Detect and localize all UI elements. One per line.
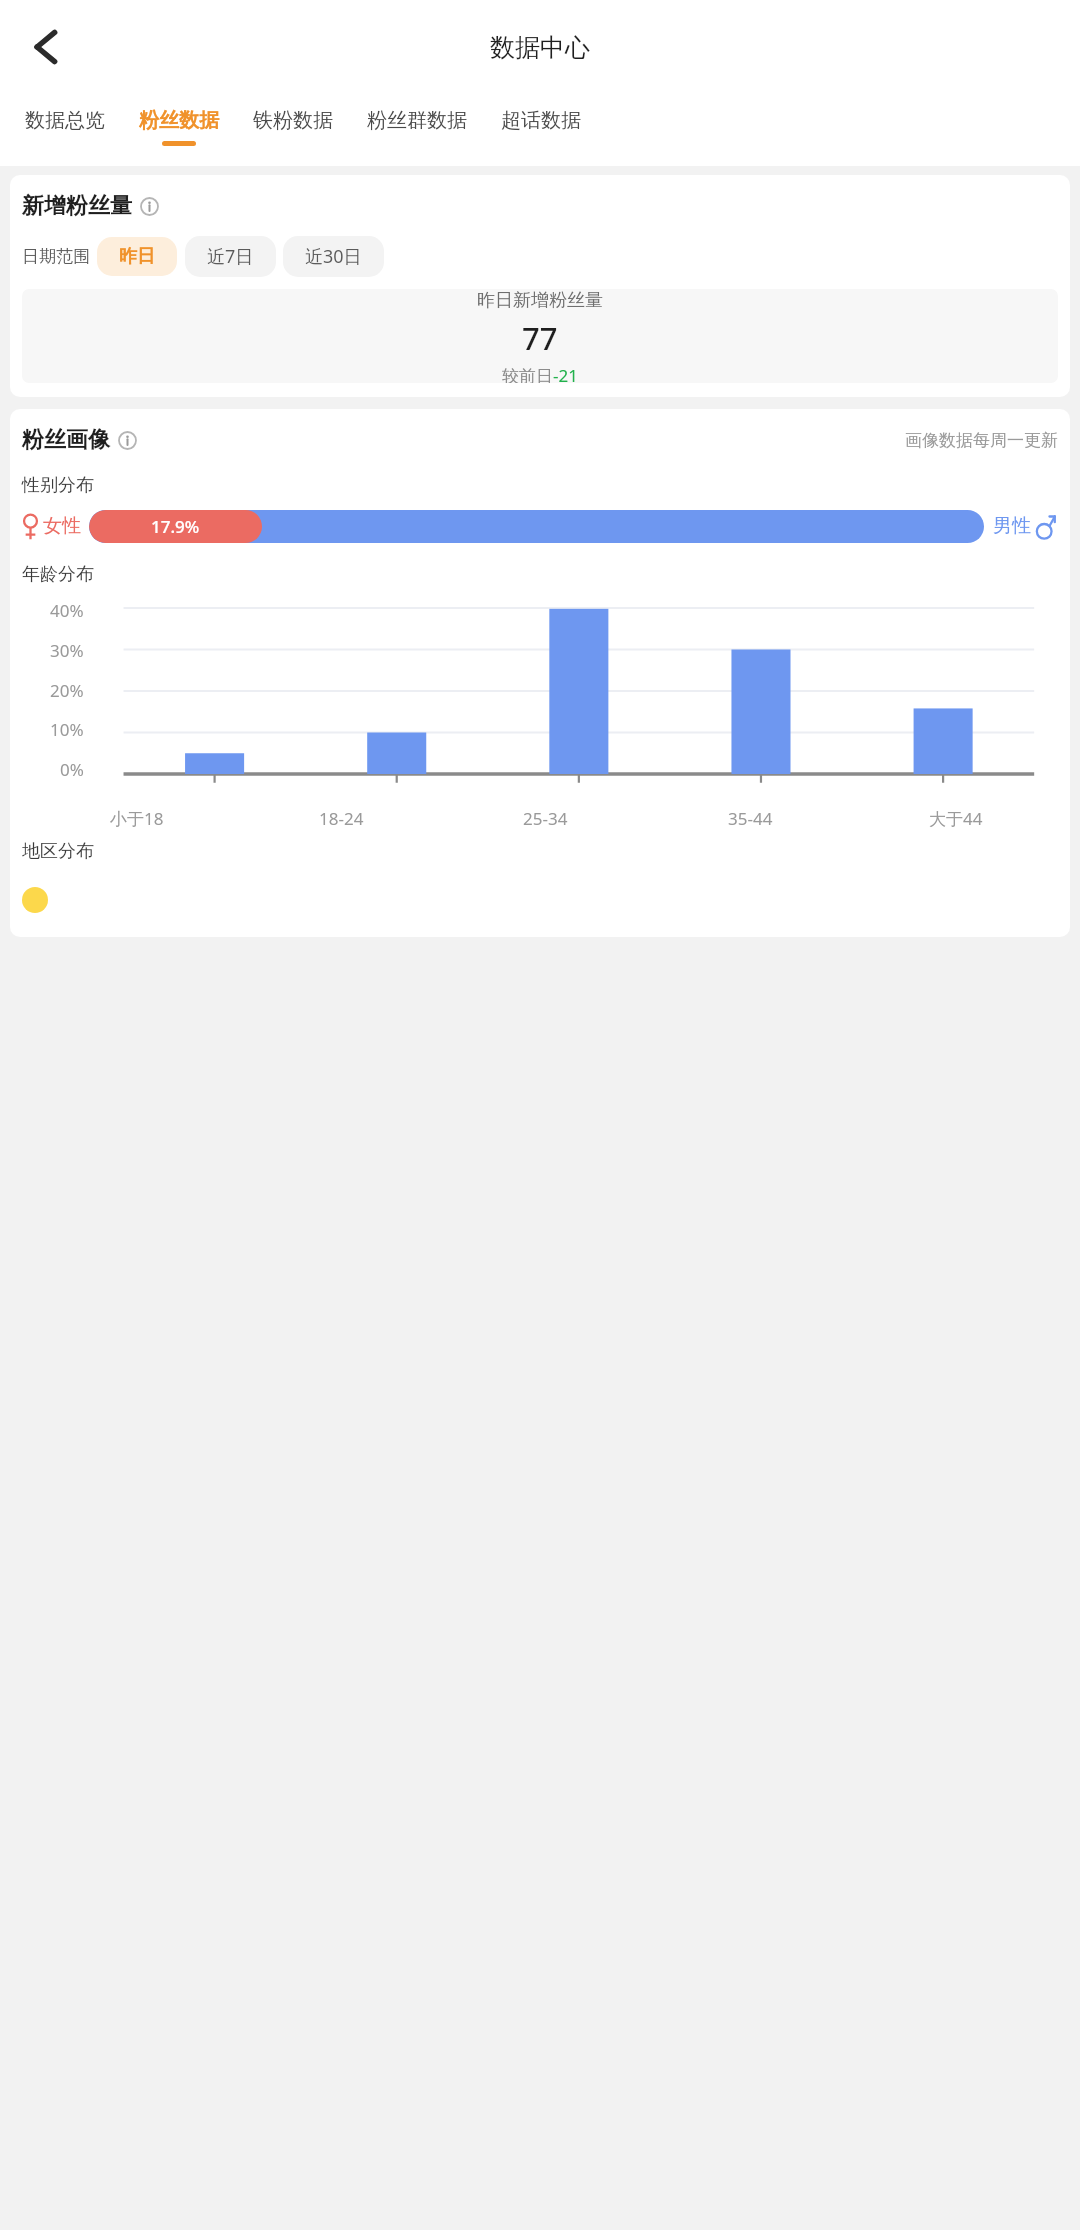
staticText: 30% [50,639,84,662]
button[interactable]: 粉丝数据 [122,94,236,166]
staticText: 0% [60,758,84,781]
staticText: 日期范围 [22,246,90,267]
button[interactable]: Back [12,20,66,74]
button[interactable]: 粉丝群数据 [350,94,484,166]
other: Female [22,513,39,540]
staticText: 25-34 [523,807,568,830]
staticText: 数据总览 [25,108,105,133]
staticText: 粉丝数据 [139,108,219,133]
staticText: 性别分布 [22,474,94,497]
button[interactable]: 近7日 [185,236,276,277]
staticText: 数据中心 [490,32,590,63]
staticText: 10% [50,718,84,741]
button[interactable]: 近30日 [283,236,384,277]
button[interactable]: 超话数据 [484,94,598,166]
staticText: 77 [522,317,558,359]
staticText: 新增粉丝量 [22,192,132,220]
staticText: 男性 [993,514,1031,538]
staticText: 铁粉数据 [253,108,333,133]
button[interactable]: 昨日 [97,237,177,276]
button[interactable]: Info [140,197,159,216]
staticText: 超话数据 [501,108,581,133]
staticText: 40% [50,599,84,622]
button[interactable]: 数据总览 [8,94,122,166]
staticText: 昨日新增粉丝量 [477,289,603,312]
staticText: 较前日-21 [502,364,578,383]
staticText: 画像数据每周一更新 [905,430,1058,451]
staticText: 昨日 [119,245,155,268]
staticText: 近7日 [207,244,254,269]
staticText: 粉丝群数据 [367,108,467,133]
staticText: 35-44 [728,807,773,830]
staticText: 粉丝画像 [22,426,110,454]
staticText: 小于18 [110,807,164,830]
staticText: 女性 [43,514,81,538]
staticText: 大于44 [929,807,983,830]
button[interactable]: Info [118,431,137,450]
staticText: 17.9% [151,515,200,538]
staticText: 18-24 [319,807,364,830]
staticText: 20% [50,679,84,702]
button[interactable]: 铁粉数据 [236,94,350,166]
staticText: 近30日 [305,244,362,269]
staticText: 地区分布 [22,840,94,863]
other: Male [1035,513,1058,540]
staticText: 年龄分布 [22,563,94,586]
